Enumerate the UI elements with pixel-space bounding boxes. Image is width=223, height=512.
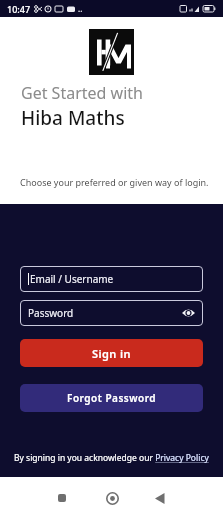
staticText: ..	[78, 3, 83, 14]
staticText: 10:47	[7, 3, 31, 15]
staticText: Password	[28, 306, 74, 320]
staticText: Get Started with	[21, 82, 143, 104]
button[interactable]: Password	[20, 300, 203, 326]
staticText: Email / Username	[30, 272, 114, 286]
button[interactable]	[182, 307, 195, 319]
staticText: Forgot Password	[67, 391, 157, 405]
button[interactable]	[104, 490, 120, 506]
staticText: Choose your preferred or given way of lo…	[20, 176, 209, 188]
button[interactable]: Sign in	[20, 339, 203, 367]
button[interactable]	[54, 490, 70, 506]
button[interactable]: By signing in you acknowledge our Privac…	[14, 452, 209, 464]
button[interactable]: Forgot Password	[20, 384, 203, 412]
button[interactable]	[152, 490, 168, 506]
button[interactable]: Email / Username	[20, 266, 203, 292]
staticText: Hiba Maths	[21, 105, 125, 131]
staticText: Sign in	[92, 346, 131, 361]
